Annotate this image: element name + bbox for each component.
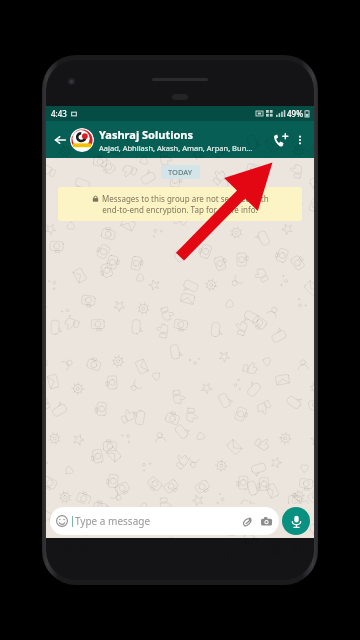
staticText: TODAY: [168, 167, 193, 177]
button[interactable]: Group call: [269, 129, 291, 151]
button[interactable]: Group photo: [70, 128, 94, 152]
button[interactable]: Type a message: [50, 507, 279, 535]
staticText: Yashraj Solutions: [99, 127, 193, 142]
staticText: Messages to this group are not secured w…: [102, 193, 269, 204]
staticText: 49%: [287, 108, 303, 119]
staticText: Aajad, Abhilash, Akash, Aman, Arpan, Bun…: [99, 143, 253, 153]
staticText: Type a message: [75, 514, 151, 528]
button[interactable]: Camera: [259, 514, 273, 528]
staticText: end-to-end encryption. Tap for more info…: [102, 204, 258, 215]
staticText: 4:43: [51, 108, 67, 119]
button[interactable]: More options: [291, 131, 309, 149]
button[interactable]: Back: [51, 131, 69, 149]
button[interactable]: Voice message: [282, 507, 310, 535]
button[interactable]: Attach: [240, 514, 254, 528]
